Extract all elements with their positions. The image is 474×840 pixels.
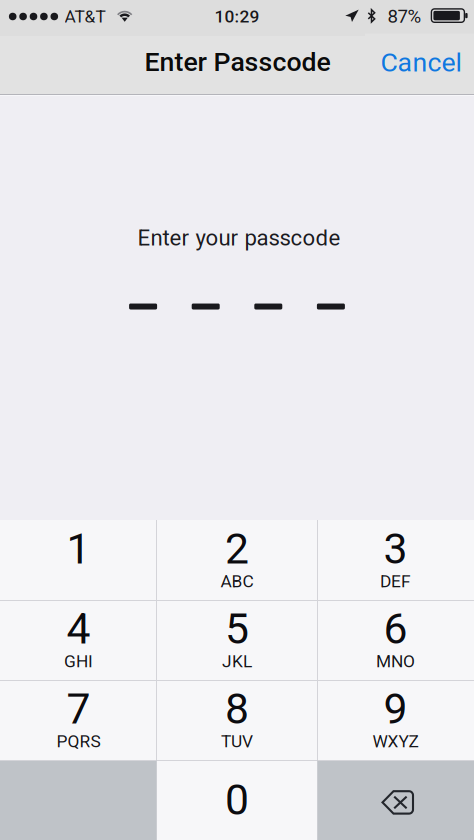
staticText: ABC: [220, 571, 253, 591]
staticText: 1: [66, 524, 90, 574]
staticText: DEF: [380, 571, 411, 591]
button[interactable]: 8: [158, 680, 315, 759]
staticText: PQRS: [56, 731, 100, 751]
button[interactable]: 2: [158, 520, 315, 599]
staticText: 8: [225, 684, 249, 734]
button[interactable]: 6: [317, 600, 474, 679]
button[interactable]: 7: [0, 680, 157, 759]
staticText: 7: [66, 684, 90, 734]
button[interactable]: 1: [0, 520, 157, 599]
staticText: Enter your passcode: [137, 225, 340, 251]
button[interactable]: Delete: [317, 760, 473, 840]
staticText: TUV: [221, 731, 253, 751]
staticText: 2: [225, 524, 249, 574]
staticText: 5: [225, 604, 249, 654]
button[interactable]: 4: [0, 600, 157, 679]
staticText: 0: [225, 775, 249, 825]
staticText: 6: [383, 604, 407, 654]
staticText: 4: [66, 604, 90, 654]
staticText: JKL: [222, 651, 252, 671]
staticText: AT&T: [64, 6, 105, 27]
staticText: GHI: [64, 651, 93, 671]
staticText: 9: [383, 684, 407, 734]
staticText: 3: [383, 524, 407, 574]
button[interactable]: 5: [158, 600, 315, 679]
staticText: Enter Passcode: [144, 46, 330, 78]
staticText: Cancel: [380, 47, 461, 78]
button[interactable]: 9: [317, 680, 474, 759]
staticText: WXYZ: [372, 731, 418, 751]
staticText: MNO: [376, 651, 415, 671]
staticText: 87%: [387, 5, 421, 27]
button[interactable]: 3: [317, 520, 474, 599]
button[interactable]: 0: [157, 760, 317, 840]
staticText: 10:29: [214, 6, 259, 27]
button[interactable]: Cancel: [365, 33, 474, 91]
